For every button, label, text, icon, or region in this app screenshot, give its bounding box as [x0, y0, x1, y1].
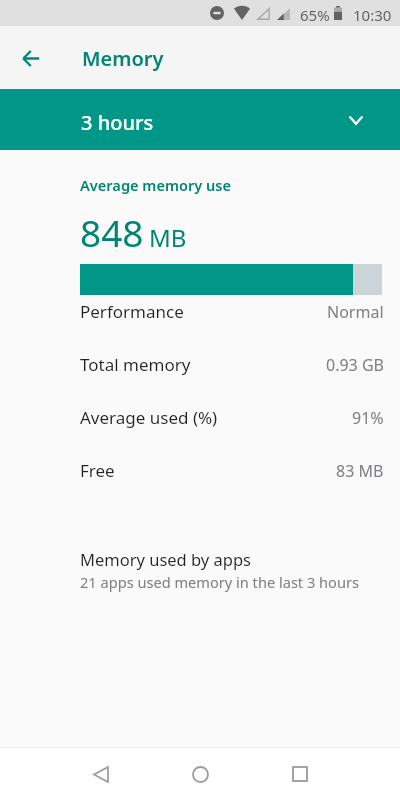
- staticText: 0.93 GB: [326, 354, 384, 376]
- staticText: 3 hours: [81, 109, 154, 136]
- button[interactable]: Average used (%): [0, 391, 400, 444]
- staticText: 848: [80, 207, 144, 257]
- staticText: 10:30: [353, 5, 392, 25]
- button[interactable]: Home: [172, 748, 228, 800]
- staticText: Memory: [82, 45, 164, 72]
- staticText: Performance: [80, 300, 184, 323]
- button[interactable]: Performance: [0, 285, 400, 338]
- staticText: Normal: [327, 301, 384, 323]
- staticText: 91%: [352, 407, 384, 429]
- button[interactable]: Memory used by apps: [0, 541, 400, 602]
- staticText: 83 MB: [336, 460, 384, 482]
- staticText: Memory used by apps: [80, 548, 252, 570]
- staticText: 21 apps used memory in the last 3 hours: [80, 572, 359, 592]
- staticText: 65%: [300, 5, 330, 25]
- button[interactable]: Total memory: [0, 338, 400, 391]
- button[interactable]: Free: [0, 444, 400, 497]
- staticText: MB: [149, 221, 187, 254]
- button[interactable]: Back: [73, 748, 129, 800]
- button[interactable]: Recents: [272, 748, 328, 800]
- staticText: Average used (%): [80, 406, 218, 429]
- staticText: Total memory: [80, 353, 191, 376]
- staticText: Average memory use: [80, 175, 232, 195]
- button[interactable]: Back: [9, 36, 53, 80]
- staticText: Free: [80, 459, 115, 482]
- button[interactable]: 3 hours: [0, 89, 400, 150]
